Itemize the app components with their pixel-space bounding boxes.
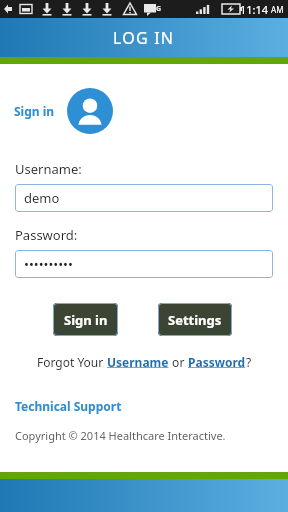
button[interactable]: Technical Support <box>15 396 122 416</box>
button[interactable]: Settings <box>158 303 232 336</box>
staticText: 4G <box>152 4 162 14</box>
button[interactable]: demo <box>15 184 273 212</box>
staticText: Password <box>188 354 246 370</box>
staticText: Sign in <box>14 103 55 119</box>
button[interactable]: User avatar <box>67 88 113 134</box>
staticText: Username: <box>15 160 82 178</box>
staticText: Copyright © 2014 Healthcare Interactive. <box>15 428 226 443</box>
staticText: Settings <box>168 311 222 329</box>
staticText: AM <box>269 4 284 15</box>
staticText: Sign in <box>64 311 108 329</box>
staticText: ? <box>246 354 252 370</box>
staticText: •••••••••• <box>24 255 73 273</box>
staticText: 11:14 <box>240 2 269 17</box>
staticText: LOG IN <box>113 27 175 49</box>
button[interactable]: Sign in <box>12 99 57 123</box>
staticText: Password: <box>15 226 78 244</box>
staticText: Username <box>107 354 169 370</box>
button[interactable]: Sign in <box>53 303 118 336</box>
button[interactable]: Password <box>188 354 246 370</box>
staticText: or <box>169 354 188 370</box>
button[interactable]: Username <box>107 354 169 370</box>
staticText: Technical Support <box>15 398 122 414</box>
button[interactable]: •••••••••• <box>15 250 273 278</box>
staticText: demo <box>24 189 60 207</box>
staticText: Forgot Your <box>37 354 107 370</box>
